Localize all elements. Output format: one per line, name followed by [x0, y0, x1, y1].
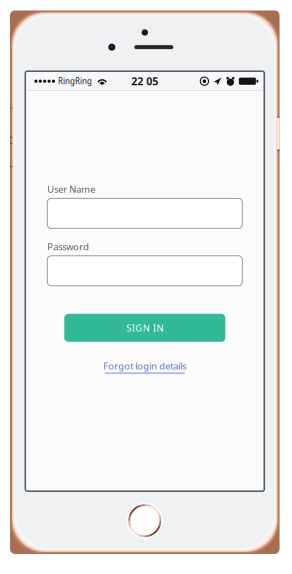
- staticText: I: [132, 322, 135, 334]
- staticText: User Name: [47, 183, 95, 195]
- staticText: N: [156, 322, 163, 334]
- staticText: RingRing: [58, 76, 92, 86]
- staticText: N: [143, 322, 150, 334]
- button[interactable]: Forgot login details: [103, 360, 186, 373]
- staticText: S: [126, 322, 131, 334]
- staticText: Forgot login details: [103, 360, 186, 372]
- staticText: I: [153, 322, 156, 334]
- staticText: 22 05: [131, 74, 158, 88]
- button[interactable]: S: [64, 314, 225, 342]
- staticText: Password: [47, 240, 89, 253]
- staticText: G: [135, 322, 142, 334]
